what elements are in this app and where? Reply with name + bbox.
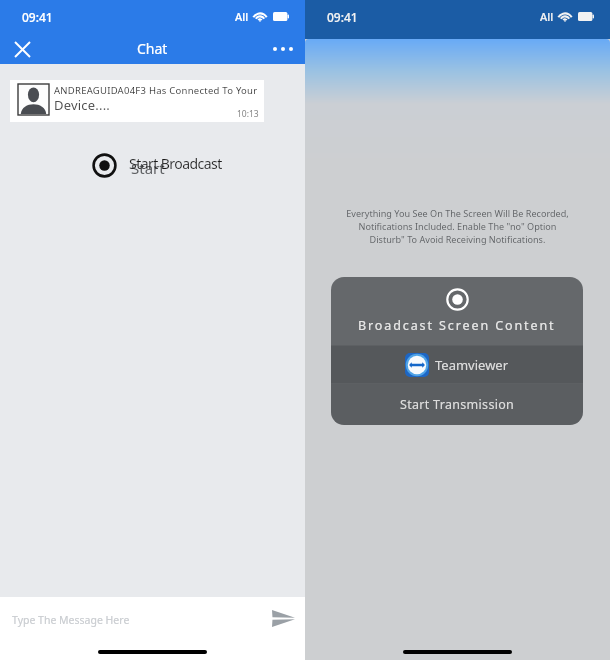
button[interactable]: Start xyxy=(92,152,245,178)
staticText: Start Transmission xyxy=(400,396,515,413)
staticText: Everything You See On The Screen Will Be… xyxy=(305,207,610,246)
staticText: All xyxy=(540,9,554,24)
staticText: Device.... xyxy=(54,96,111,114)
staticText: Type The Message Here xyxy=(12,613,130,627)
staticText: Chat xyxy=(137,39,168,58)
staticText: Start xyxy=(131,158,165,178)
button[interactable]: ANDREAGUIDA04F3 Has Connected To Your xyxy=(10,80,264,122)
button[interactable]: More options xyxy=(269,35,297,63)
staticText: 10:13 xyxy=(237,108,259,120)
staticText: All xyxy=(235,9,249,24)
staticText: Teamviewer xyxy=(435,356,509,374)
button[interactable]: Send xyxy=(269,604,297,632)
staticText: Start Broadcast xyxy=(129,154,222,173)
staticText: Broadcast Screen Content xyxy=(358,317,556,334)
button[interactable]: Start Transmission xyxy=(331,384,583,425)
staticText: 09:41 xyxy=(327,9,358,25)
staticText: ANDREAGUIDA04F3 Has Connected To Your xyxy=(54,84,258,97)
button[interactable]: Teamviewer xyxy=(331,346,583,383)
staticText: 09:41 xyxy=(22,9,53,25)
button[interactable]: Close xyxy=(8,35,36,63)
